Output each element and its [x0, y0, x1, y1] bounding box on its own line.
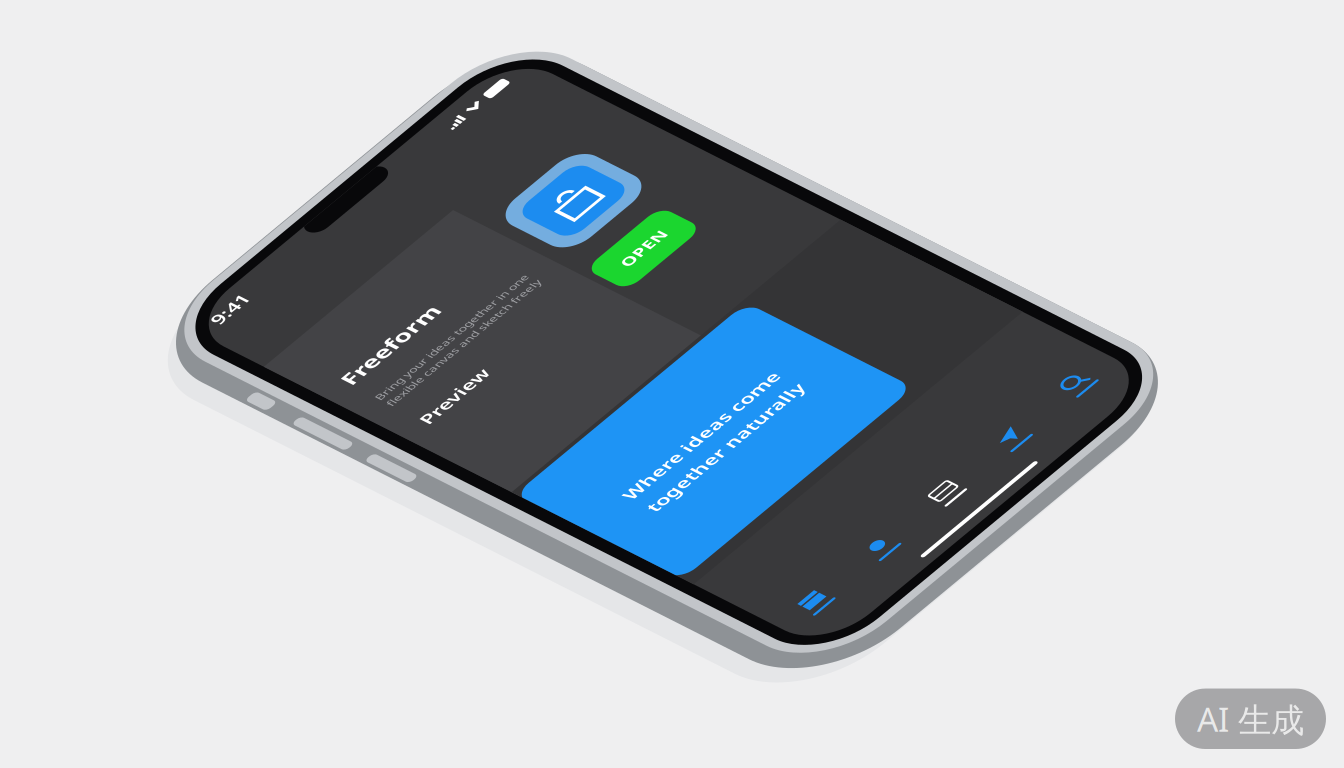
button[interactable]: OPEN	[233, 283, 323, 341]
staticText: AI 生成	[1197, 697, 1304, 741]
